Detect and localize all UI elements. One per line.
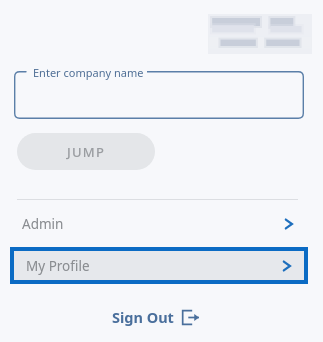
staticText: JUMP: [67, 143, 106, 161]
other: Sign Out: [182, 309, 199, 326]
staticText: My Profile: [26, 257, 90, 275]
button[interactable]: Enter company name: [14, 71, 304, 119]
other: Open: [282, 258, 292, 274]
other: Open: [284, 216, 294, 232]
staticText: Enter company name: [33, 65, 144, 80]
staticText: Admin: [22, 215, 64, 233]
button[interactable]: JUMP: [17, 133, 155, 170]
staticText: Sign Out: [112, 307, 174, 327]
button[interactable]: My Profile: [10, 247, 308, 284]
button[interactable]: Sign Out: [108, 303, 203, 331]
button[interactable]: Admin: [12, 207, 308, 241]
